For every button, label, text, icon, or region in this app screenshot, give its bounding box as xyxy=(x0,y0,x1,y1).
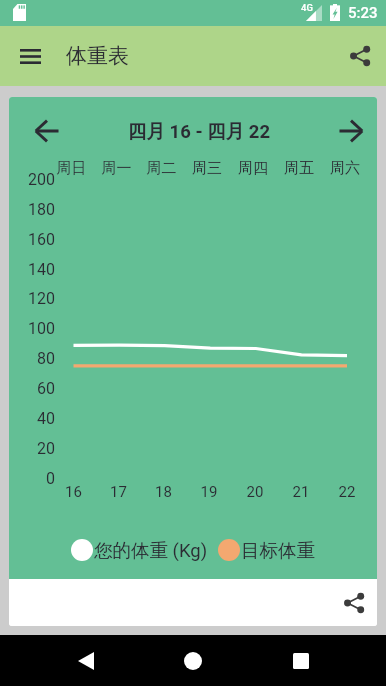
staticText: 100 xyxy=(9,319,55,338)
staticText: 20 xyxy=(232,483,278,501)
staticText: 四月 16 - 四月 22 xyxy=(15,120,377,143)
button[interactable]: Back xyxy=(62,637,110,685)
staticText: 5:23 xyxy=(348,4,378,22)
staticText: 0 xyxy=(9,469,55,488)
staticText: 140 xyxy=(9,260,55,279)
staticText: 160 xyxy=(9,230,55,249)
staticText: 19 xyxy=(186,483,232,501)
staticText: 18 xyxy=(141,483,186,501)
staticText: 180 xyxy=(9,200,55,219)
staticText: 周六 xyxy=(322,159,368,177)
staticText: 目标体重 xyxy=(241,539,315,561)
staticText: 80 xyxy=(9,349,55,368)
staticText: 20 xyxy=(9,439,55,458)
staticText: 200 xyxy=(9,170,55,189)
staticText: 40 xyxy=(9,409,55,428)
staticText: 您的体重 (Kg) xyxy=(94,539,208,561)
staticText: 周一 xyxy=(94,159,139,177)
staticText: 120 xyxy=(9,289,55,308)
button[interactable]: Next week xyxy=(326,106,376,156)
button[interactable]: Menu xyxy=(9,35,51,77)
staticText: 体重表 xyxy=(66,43,129,69)
staticText: 21 xyxy=(278,483,324,501)
staticText: 周四 xyxy=(230,159,276,177)
staticText: 周三 xyxy=(184,159,230,177)
staticText: 60 xyxy=(9,379,55,398)
staticText: 周二 xyxy=(139,159,184,177)
button[interactable]: Home xyxy=(169,637,217,685)
button[interactable]: Share xyxy=(337,586,371,620)
button[interactable]: Share xyxy=(339,35,381,77)
staticText: 17 xyxy=(96,483,141,501)
staticText: 4G xyxy=(301,2,313,13)
staticText: 22 xyxy=(324,483,370,501)
button[interactable]: Previous week xyxy=(22,106,72,156)
button[interactable]: Recents xyxy=(277,637,325,685)
staticText: 16 xyxy=(51,483,96,501)
staticText: 周五 xyxy=(276,159,322,177)
staticText: 周日 xyxy=(49,159,94,177)
